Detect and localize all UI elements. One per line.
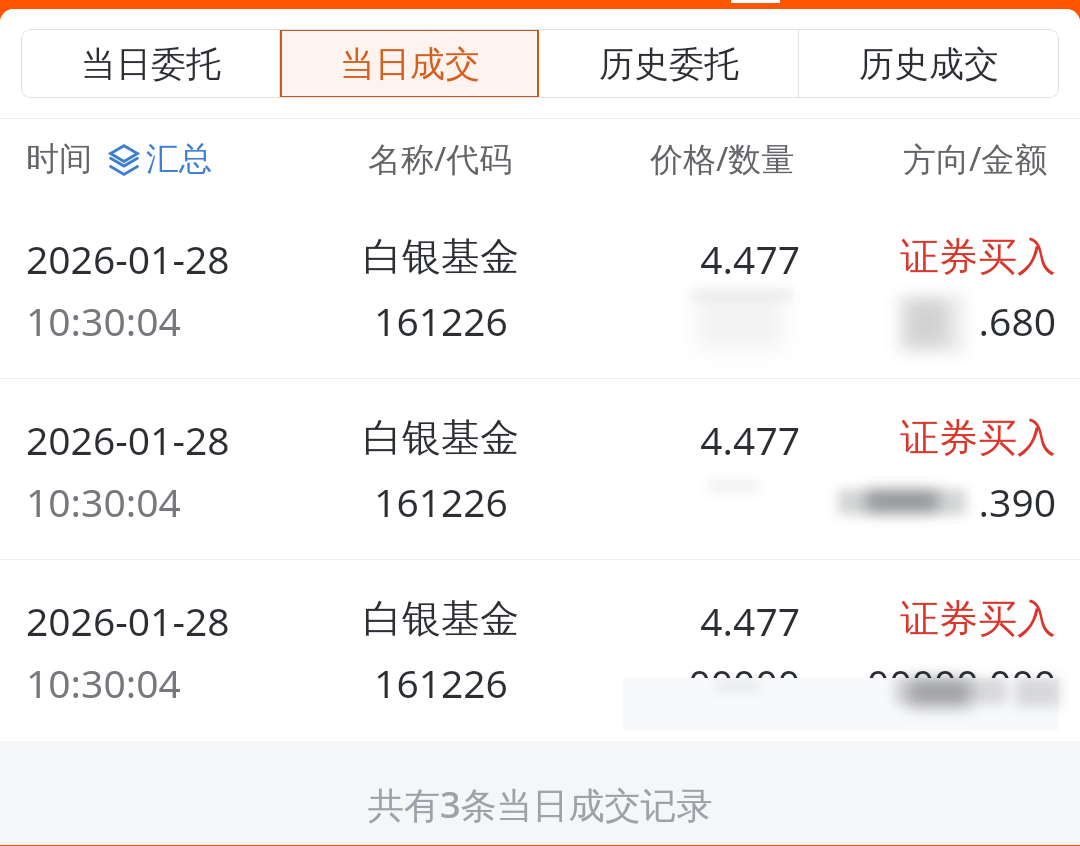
staticText: 2026-01-28 bbox=[26, 413, 230, 466]
staticText: 4.477 bbox=[600, 232, 800, 285]
staticText: 时间 bbox=[26, 138, 92, 180]
staticText: 00000.000 bbox=[856, 656, 1056, 709]
staticText: 白银基金 bbox=[341, 413, 541, 462]
staticText: 161226 bbox=[341, 294, 541, 347]
staticText: 共有3条当日成交记录 bbox=[368, 780, 713, 829]
staticText: 白银基金 bbox=[341, 232, 541, 281]
staticText: 10:30:04 bbox=[26, 475, 181, 528]
button[interactable]: 历史委托 bbox=[539, 29, 799, 98]
button[interactable]: 当日成交 bbox=[280, 29, 539, 98]
staticText: 白银基金 bbox=[341, 594, 541, 643]
staticText: 价格/数量 bbox=[650, 136, 795, 181]
button[interactable]: 历史成交 bbox=[799, 29, 1059, 98]
staticText: 10:30:04 bbox=[26, 656, 181, 709]
other: 汇总 bbox=[109, 144, 139, 175]
button[interactable]: 当日委托 bbox=[21, 29, 280, 98]
staticText: 方向/金额 bbox=[903, 136, 1048, 181]
button[interactable]: 时间 bbox=[26, 138, 212, 180]
staticText: 00000 bbox=[600, 656, 800, 709]
button[interactable]: 2026-01-28 bbox=[0, 198, 1080, 378]
button[interactable]: 2026-01-28 bbox=[0, 560, 1080, 740]
staticText: .390 bbox=[856, 475, 1056, 528]
staticText: 名称/代码 bbox=[368, 136, 513, 181]
staticText: 2026-01-28 bbox=[26, 594, 230, 647]
button[interactable]: 2026-01-28 bbox=[0, 379, 1080, 559]
staticText: 历史成交 bbox=[859, 42, 999, 86]
staticText: 4.477 bbox=[600, 594, 800, 647]
staticText: 161226 bbox=[341, 656, 541, 709]
staticText: 当日成交 bbox=[340, 42, 480, 86]
staticText: 161226 bbox=[341, 475, 541, 528]
staticText: .680 bbox=[856, 294, 1056, 347]
staticText: 证券买入 bbox=[856, 232, 1056, 281]
staticText: 10:30:04 bbox=[26, 294, 181, 347]
staticText: 证券买入 bbox=[856, 413, 1056, 462]
staticText: 2026-01-28 bbox=[26, 232, 230, 285]
staticText: 证券买入 bbox=[856, 594, 1056, 643]
staticText: 4.477 bbox=[600, 413, 800, 466]
staticText: 汇总 bbox=[146, 138, 212, 180]
staticText: 历史委托 bbox=[599, 42, 739, 86]
staticText: 当日委托 bbox=[81, 42, 221, 86]
